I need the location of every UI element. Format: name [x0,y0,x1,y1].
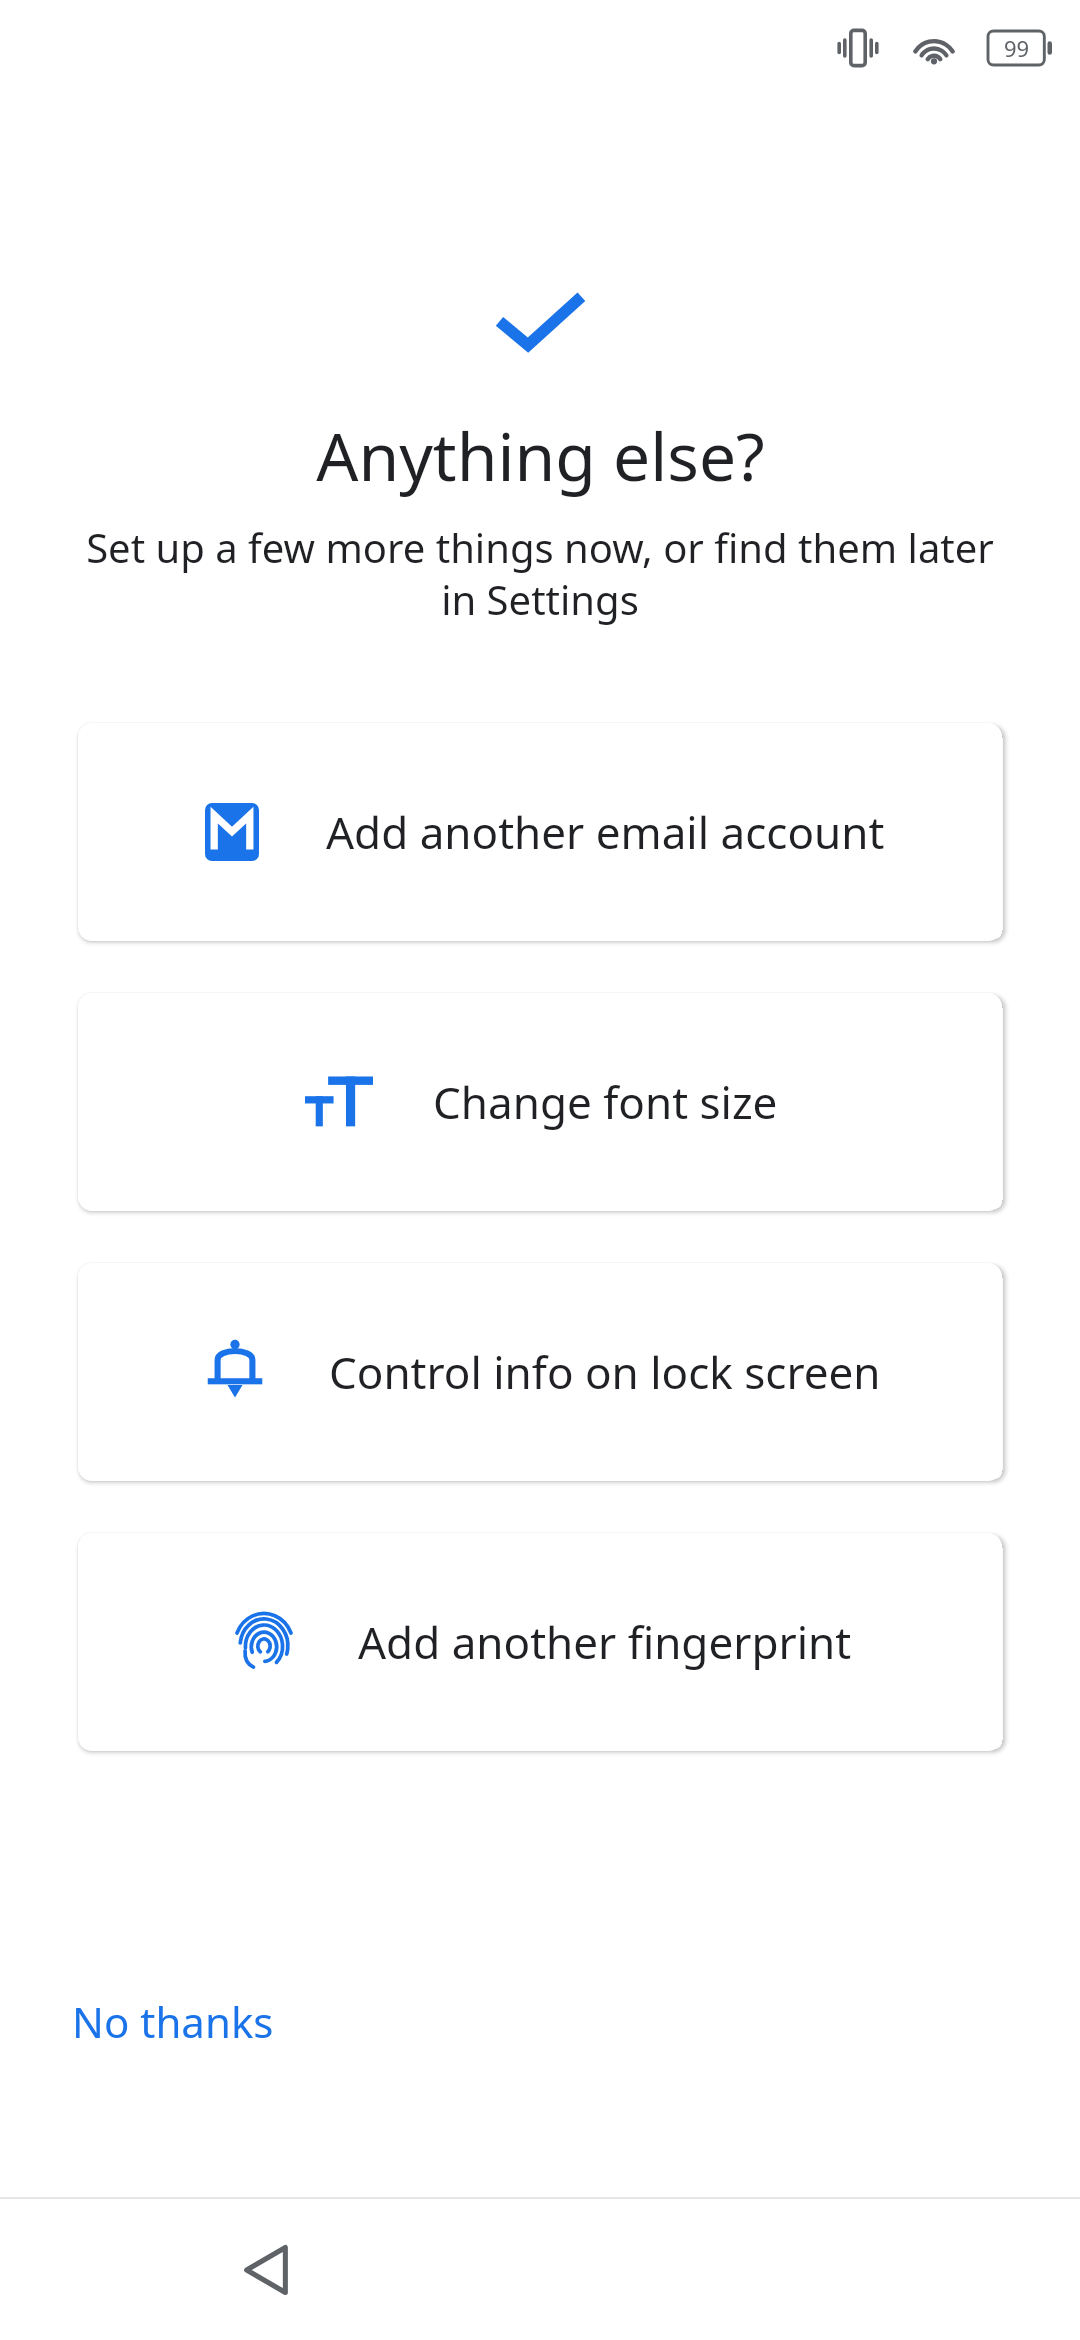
button[interactable]: Add another email account [78,723,1002,941]
button[interactable]: Add another fingerprint [78,1533,1002,1751]
button[interactable]: Control info on lock screen [78,1263,1002,1481]
staticText: No thanks [72,1993,274,2050]
staticText: 99 [1004,33,1030,63]
staticText: Add another fingerprint [358,1612,852,1672]
button[interactable]: No thanks [40,1977,306,2066]
staticText: Add another email account [326,802,885,862]
staticText: Control info on lock screen [329,1342,881,1402]
staticText: Set up a few more things now, or find th… [70,520,1010,627]
button[interactable]: Back [196,2200,336,2340]
staticText: Anything else? [316,410,765,500]
staticText: Change font size [433,1072,778,1132]
button[interactable]: Change font size [78,993,1002,1211]
